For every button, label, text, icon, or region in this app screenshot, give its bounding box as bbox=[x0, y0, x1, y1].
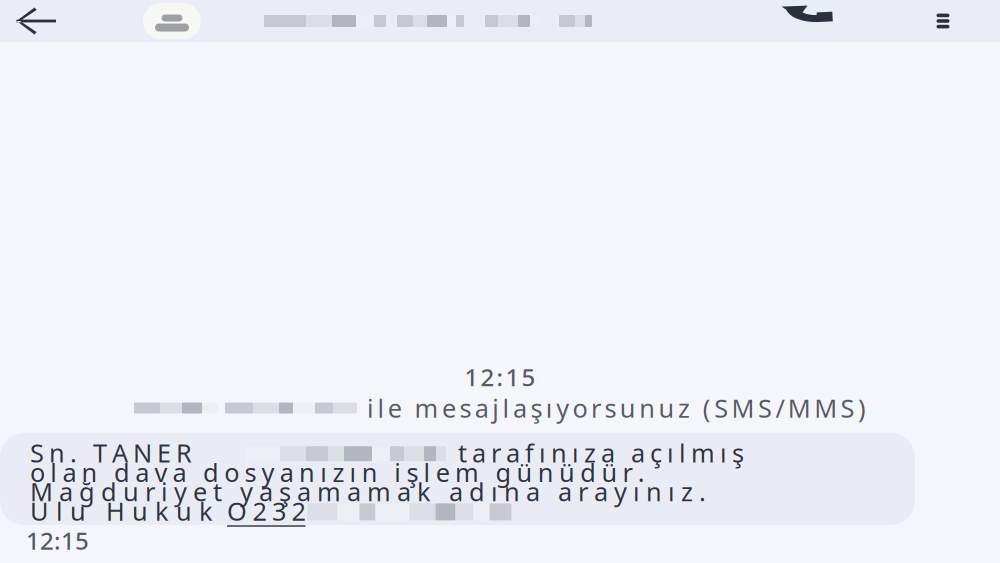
staticText: 1 bbox=[464, 361, 478, 393]
staticText: ı bbox=[546, 391, 553, 425]
staticText: ı bbox=[667, 436, 674, 469]
staticText: ü bbox=[517, 455, 533, 489]
staticText: 5 bbox=[521, 361, 535, 393]
button[interactable]: Call bbox=[748, 0, 916, 42]
staticText: a bbox=[601, 436, 615, 469]
staticText: ı bbox=[350, 455, 357, 489]
staticText: a bbox=[173, 455, 187, 489]
staticText: e bbox=[436, 455, 450, 489]
staticText: M bbox=[732, 391, 755, 425]
staticText: M bbox=[30, 475, 53, 508]
staticText: k bbox=[155, 494, 169, 528]
staticText: u bbox=[620, 391, 636, 425]
staticText: z bbox=[332, 455, 344, 489]
staticText: e bbox=[388, 391, 402, 425]
staticText: ç bbox=[650, 436, 662, 469]
staticText: ) bbox=[858, 391, 866, 425]
staticText: a bbox=[506, 436, 520, 469]
staticText: : bbox=[496, 361, 503, 393]
staticText: m bbox=[415, 391, 439, 425]
staticText: v bbox=[154, 455, 167, 489]
staticText: n bbox=[49, 436, 65, 469]
staticText: M bbox=[814, 391, 837, 425]
staticText: s bbox=[604, 391, 616, 425]
staticText: ı bbox=[572, 436, 579, 469]
staticText: y bbox=[556, 391, 569, 425]
staticText: m bbox=[691, 436, 715, 469]
staticText: ı bbox=[320, 455, 327, 489]
staticText: a bbox=[59, 475, 73, 508]
staticText: ü bbox=[601, 455, 617, 489]
staticText: ( bbox=[703, 391, 711, 425]
staticText: n bbox=[551, 436, 567, 469]
staticText: n bbox=[362, 455, 378, 489]
staticText: k bbox=[199, 494, 213, 528]
staticText: r bbox=[623, 455, 633, 489]
button[interactable]: More options bbox=[916, 0, 1000, 42]
staticText: i bbox=[367, 391, 374, 425]
staticText: n bbox=[504, 475, 520, 508]
staticText: N bbox=[133, 436, 152, 469]
staticText: a bbox=[259, 475, 273, 508]
staticText: ı bbox=[668, 475, 675, 508]
staticText: a bbox=[475, 391, 489, 425]
staticText: m bbox=[317, 475, 341, 508]
staticText: a bbox=[526, 475, 540, 508]
staticText: O bbox=[227, 494, 247, 528]
staticText: ş bbox=[406, 455, 418, 489]
staticText: d bbox=[101, 475, 117, 508]
staticText: S bbox=[758, 391, 772, 425]
staticText: S bbox=[30, 436, 44, 469]
staticText: d bbox=[580, 455, 596, 489]
staticText: ü bbox=[559, 455, 575, 489]
button[interactable]: Contact bbox=[143, 0, 748, 42]
staticText: E bbox=[157, 436, 171, 469]
staticText: u bbox=[659, 391, 675, 425]
staticText: z bbox=[681, 475, 693, 508]
staticText: n bbox=[646, 475, 662, 508]
staticText: u bbox=[123, 475, 139, 508]
staticText: l bbox=[424, 455, 431, 489]
staticText: ı bbox=[539, 436, 546, 469]
staticText: d bbox=[469, 475, 485, 508]
staticText: g bbox=[495, 455, 511, 489]
staticText: S bbox=[841, 391, 855, 425]
staticText: ı bbox=[720, 436, 727, 469]
staticText: u bbox=[132, 494, 148, 528]
staticText: T bbox=[93, 436, 107, 469]
staticText: a bbox=[280, 455, 294, 489]
staticText: ş bbox=[279, 475, 291, 508]
staticText: 1 bbox=[505, 361, 519, 393]
staticText: a bbox=[558, 475, 572, 508]
staticText: z bbox=[678, 391, 690, 425]
staticText: a bbox=[397, 475, 411, 508]
staticText: l bbox=[50, 455, 57, 489]
staticText: y bbox=[240, 475, 253, 508]
staticText: r bbox=[145, 475, 155, 508]
staticText: U bbox=[30, 494, 49, 528]
staticText: s bbox=[459, 391, 471, 425]
staticText: y bbox=[262, 455, 275, 489]
staticText: y bbox=[174, 475, 187, 508]
staticText: d bbox=[203, 455, 219, 489]
button[interactable]: Back bbox=[0, 0, 143, 42]
staticText: ş bbox=[530, 391, 542, 425]
staticText: m bbox=[367, 475, 391, 508]
staticText: o bbox=[573, 391, 588, 425]
staticText: M bbox=[788, 391, 811, 425]
staticText: u bbox=[70, 494, 86, 528]
staticText: t bbox=[213, 475, 222, 508]
staticText: n bbox=[538, 455, 554, 489]
staticText: S bbox=[714, 391, 728, 425]
staticText: l bbox=[56, 494, 63, 528]
staticText: a bbox=[347, 475, 361, 508]
staticText: a bbox=[62, 455, 76, 489]
staticText: 3 bbox=[272, 494, 286, 528]
staticText: t bbox=[458, 436, 467, 469]
staticText: a bbox=[297, 475, 311, 508]
staticText: n bbox=[299, 455, 315, 489]
staticText: i bbox=[161, 475, 168, 508]
staticText: o bbox=[30, 455, 45, 489]
staticText: 12:15 bbox=[26, 525, 89, 556]
staticText: y bbox=[614, 475, 627, 508]
